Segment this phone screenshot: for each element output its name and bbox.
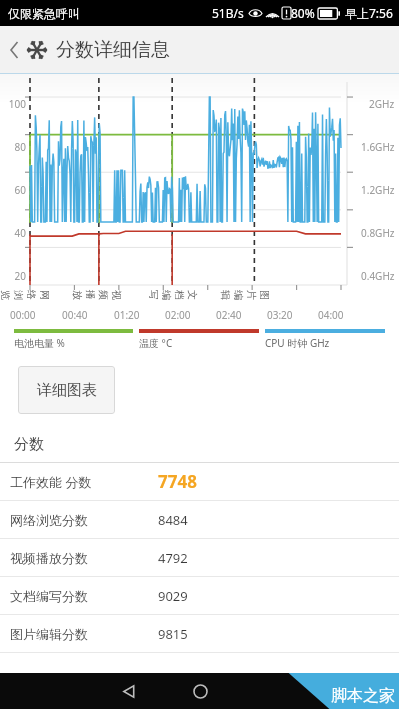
staticText: 00:40 <box>62 308 88 322</box>
staticText: 9815 <box>158 625 188 643</box>
staticText: 8484 <box>158 511 188 529</box>
staticText: 脚本之家 <box>331 686 395 706</box>
staticText: 80% <box>291 5 315 21</box>
staticText: 03:20 <box>267 308 293 322</box>
staticText: 7748 <box>158 470 197 493</box>
staticText: 1.6GHz <box>361 140 395 154</box>
staticText: 100 <box>2 97 26 111</box>
button[interactable]: 图片编辑分数 <box>0 615 399 652</box>
staticText: 分数详细信息 <box>56 38 170 62</box>
staticText: 文档编写 <box>147 290 199 304</box>
staticText: 仅限紧急呼叫 <box>8 6 80 21</box>
staticText: 2GHz <box>369 97 395 111</box>
staticText: 02:40 <box>216 308 242 322</box>
staticText: 4792 <box>158 549 188 567</box>
staticText: 02:00 <box>165 308 191 322</box>
staticText: 工作效能 分数 <box>10 473 150 491</box>
button[interactable]: 网络浏览分数 <box>0 501 399 538</box>
button[interactable]: 详细图表 <box>18 366 115 414</box>
button[interactable]: Home <box>183 674 217 708</box>
staticText: 9029 <box>158 587 188 605</box>
staticText: 电池电量 % <box>14 336 65 350</box>
staticText: 51B/s <box>212 5 244 21</box>
staticText: 温度 °C <box>139 336 173 350</box>
staticText: 20 <box>2 269 26 283</box>
staticText: 80 <box>2 140 26 154</box>
staticText: 网络浏览分数 <box>10 512 150 528</box>
button[interactable]: 文档编写分数 <box>0 577 399 614</box>
staticText: 分数 <box>14 435 44 454</box>
staticText: 详细图表 <box>37 381 97 400</box>
staticText: 04:00 <box>318 308 344 322</box>
staticText: 00:00 <box>10 308 36 322</box>
staticText: 图片编辑 <box>219 290 271 304</box>
staticText: 文档编写分数 <box>10 588 150 604</box>
staticText: 视频播放分数 <box>10 550 150 566</box>
staticText: 0.4GHz <box>361 269 395 283</box>
staticText: 40 <box>2 226 26 240</box>
other: Back <box>6 41 24 59</box>
staticText: 0.8GHz <box>361 226 395 240</box>
staticText: 早上7:56 <box>345 5 393 21</box>
staticText: 图片编辑分数 <box>10 626 150 642</box>
button[interactable]: Back <box>0 26 399 73</box>
staticText: 网络浏览 <box>0 290 51 304</box>
button[interactable]: 视频播放分数 <box>0 539 399 576</box>
staticText: 视频播放 <box>71 290 123 304</box>
staticText: CPU 时钟 GHz <box>265 336 330 350</box>
button[interactable]: 工作效能 分数 <box>0 463 399 500</box>
staticText: 01:20 <box>114 308 140 322</box>
button[interactable]: Back <box>112 674 146 708</box>
staticText: 1.2GHz <box>361 183 395 197</box>
staticText: 60 <box>2 183 26 197</box>
